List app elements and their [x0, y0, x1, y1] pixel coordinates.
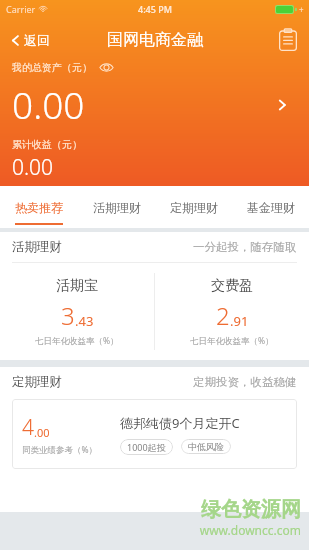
staticText: 七日年化收益率（%） [190, 335, 274, 347]
button[interactable]: 查看资产详情 [265, 88, 299, 122]
button[interactable]: 基金理财 [232, 186, 309, 228]
staticText: 国网电商金融 [107, 30, 203, 50]
staticText: 德邦纯债9个月定开C [120, 414, 240, 432]
staticText: 活期理财 [12, 239, 62, 255]
button[interactable]: 返回 [0, 18, 58, 62]
staticText: 1000起投 [127, 441, 166, 453]
button[interactable]: 活期理财 [78, 186, 155, 228]
staticText: 0.00 [12, 79, 85, 129]
button[interactable]: 定期理财 [155, 186, 232, 228]
staticText: 累计收益（元） [12, 138, 82, 151]
staticText: 七日年化收益率（%） [35, 335, 119, 347]
staticText: 定期投资，收益稳健 [193, 375, 297, 389]
button[interactable]: 热卖推荐 [0, 186, 78, 228]
staticText: 定期理财 [12, 374, 62, 390]
staticText: 同类业绩参考（%） [22, 444, 98, 456]
staticText: 2 [216, 299, 230, 332]
staticText: 3 [61, 299, 75, 332]
staticText: 我的总资产（元） [12, 61, 92, 74]
staticText: 4:45 PM [138, 3, 172, 15]
staticText: + [299, 4, 304, 15]
button[interactable]: 交费盈 [155, 263, 309, 360]
button[interactable]: 显示或隐藏资产 [97, 58, 115, 76]
staticText: 0.00 [12, 153, 54, 182]
staticText: 返回 [24, 32, 50, 48]
staticText: 4 [22, 413, 34, 442]
staticText: 绿色资源网 [201, 497, 301, 522]
staticText: 活期宝 [56, 277, 98, 295]
staticText: 一分起投，随存随取 [193, 240, 297, 254]
staticText: 中低风险 [188, 441, 224, 452]
staticText: .91 [230, 312, 249, 330]
staticText: .00 [34, 425, 50, 440]
button[interactable]: 4 [12, 399, 297, 469]
button[interactable]: 活期宝 [0, 263, 154, 360]
staticText: 基金理财 [247, 200, 295, 215]
staticText: 热卖推荐 [15, 200, 63, 215]
staticText: .43 [75, 312, 94, 330]
staticText: www.downcc.com [199, 522, 301, 538]
staticText: 定期理财 [170, 200, 218, 215]
staticText: Carrier [6, 3, 36, 15]
staticText: 交费盈 [211, 277, 253, 295]
staticText: 活期理财 [93, 200, 141, 215]
button[interactable]: 订单记录 [267, 18, 309, 62]
